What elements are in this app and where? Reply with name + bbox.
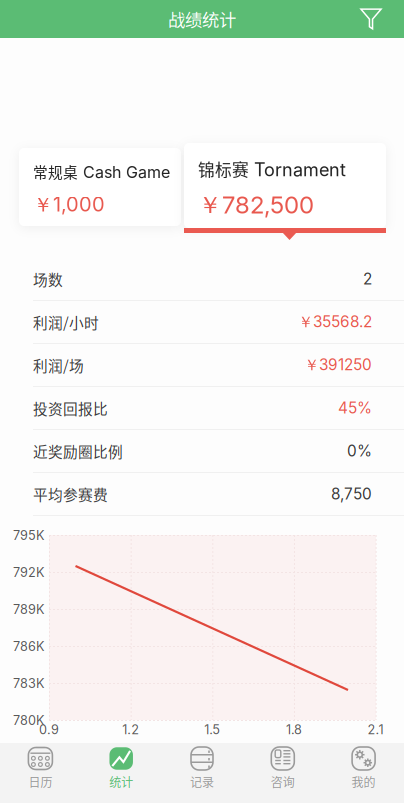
staticText: 利润/小时 xyxy=(33,311,99,333)
staticText: 我的 xyxy=(352,773,376,790)
staticText: ￥782,500 xyxy=(198,190,314,220)
staticText: 1.8 xyxy=(286,722,302,737)
staticText: 记录 xyxy=(190,773,214,790)
staticText: 锦标赛 xyxy=(198,157,249,181)
staticText: 日历 xyxy=(28,773,52,790)
staticText: 792K xyxy=(13,565,45,580)
staticText: 783K xyxy=(13,676,45,691)
staticText: 45% xyxy=(338,399,372,417)
staticText: 场数 xyxy=(33,268,63,290)
staticText: 789K xyxy=(13,602,45,617)
staticText: 咨询 xyxy=(271,773,295,790)
staticText: 795K xyxy=(13,528,45,543)
staticText: 近奖励圈比例 xyxy=(33,440,123,462)
staticText: 780K xyxy=(13,713,45,728)
staticText: 2.1 xyxy=(368,722,384,737)
staticText: Tornament xyxy=(254,159,346,181)
staticText: 平均参赛费 xyxy=(33,483,108,505)
staticText: ￥391250 xyxy=(304,355,372,375)
staticText: Cash Game xyxy=(83,162,170,182)
button[interactable]: 我的 xyxy=(323,743,404,803)
staticText: 常规桌 xyxy=(33,161,78,182)
staticText: 0% xyxy=(347,442,372,460)
button[interactable]: 锦标赛 xyxy=(184,143,386,228)
staticText: 投资回报比 xyxy=(33,397,108,419)
staticText: 2 xyxy=(363,270,372,288)
staticText: 战绩统计 xyxy=(168,6,236,32)
staticText: 利润/场 xyxy=(33,354,84,376)
button[interactable]: Filter xyxy=(351,0,391,38)
button[interactable]: 日历 xyxy=(0,743,81,803)
staticText: 统计 xyxy=(109,773,133,790)
staticText: 786K xyxy=(13,639,45,654)
button[interactable]: 常规桌 xyxy=(19,148,181,226)
staticText: 8,750 xyxy=(331,485,372,503)
staticText: ￥1,000 xyxy=(33,192,105,217)
staticText: 0.9 xyxy=(39,722,59,737)
staticText: ￥35568.2 xyxy=(298,312,372,332)
button[interactable]: 记录 xyxy=(162,743,242,803)
button[interactable]: 统计 xyxy=(81,743,162,803)
staticText: 1.5 xyxy=(204,722,220,737)
staticText: 1.2 xyxy=(122,722,139,737)
button[interactable]: 咨询 xyxy=(242,743,323,803)
